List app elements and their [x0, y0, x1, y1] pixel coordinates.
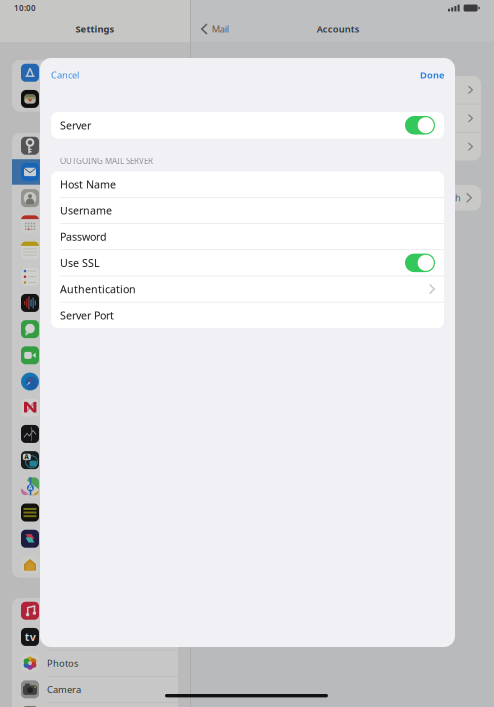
- staticText: Mail: [47, 166, 64, 178]
- staticText: Notes: [47, 244, 72, 257]
- button[interactable]: Voice Memos: [12, 290, 178, 316]
- staticText: Calendar: [47, 218, 86, 231]
- button[interactable]: Calendar: [12, 212, 178, 238]
- staticText: Cancel: [51, 69, 79, 81]
- staticText: Host Name: [60, 177, 116, 191]
- button[interactable]: Account: [203, 104, 481, 133]
- staticText: Mail: [212, 23, 229, 35]
- staticText: Use SSL: [60, 256, 100, 270]
- staticText: Done: [420, 69, 444, 81]
- button[interactable]: Passwords: [12, 133, 178, 159]
- staticText: App Store: [47, 67, 90, 79]
- button[interactable]: Password: [51, 224, 444, 250]
- staticText: tv: [25, 630, 36, 644]
- staticText: Messages: [47, 323, 88, 335]
- button[interactable]: Camera: [12, 677, 178, 703]
- button[interactable]: Books: [12, 500, 178, 526]
- button[interactable]: FaceTime: [12, 343, 178, 369]
- staticText: Accounts: [317, 23, 360, 35]
- button[interactable]: Notes: [12, 238, 178, 264]
- button[interactable]: Authentication: [51, 276, 444, 302]
- button[interactable]: Maps: [12, 474, 178, 500]
- staticText: Contacts: [47, 192, 84, 204]
- staticText: Reminders: [47, 271, 94, 283]
- button[interactable]: Host Name: [51, 171, 444, 198]
- staticText: 10:00: [14, 3, 36, 13]
- staticText: A: [28, 483, 33, 492]
- button[interactable]: Books: [12, 703, 178, 707]
- staticText: Settings: [75, 23, 114, 35]
- button[interactable]: Apple Watch: [12, 86, 178, 112]
- button[interactable]: Photos: [12, 650, 178, 677]
- button[interactable]: Shortcuts: [12, 526, 178, 552]
- button[interactable]: Stocks: [12, 421, 178, 447]
- button[interactable]: TV: [12, 624, 178, 650]
- button[interactable]: Mail: [12, 159, 178, 185]
- staticText: Photos: [47, 657, 78, 669]
- button[interactable]: Fetch New Data: [203, 185, 481, 210]
- button[interactable]: Account: [203, 133, 481, 160]
- staticText: A: [24, 452, 29, 461]
- button[interactable]: Server Port: [51, 302, 444, 328]
- staticText: Push: [439, 192, 461, 204]
- button[interactable]: Use SSL: [51, 250, 444, 276]
- button[interactable]: Username: [51, 198, 444, 224]
- staticText: Camera: [47, 683, 81, 696]
- button[interactable]: Server: [51, 112, 444, 138]
- staticText: Password: [60, 230, 107, 244]
- button[interactable]: Mail: [191, 23, 229, 35]
- button[interactable]: Cancel: [51, 61, 83, 89]
- button[interactable]: Home: [12, 552, 178, 578]
- button[interactable]: App Store: [12, 60, 178, 86]
- staticText: OUTGOING MAIL SERVER: [60, 156, 153, 166]
- staticText: Authentication: [60, 282, 136, 296]
- button[interactable]: Account: [203, 76, 481, 104]
- button[interactable]: Done: [416, 61, 444, 89]
- staticText: Voice Memos: [47, 297, 103, 309]
- button[interactable]: Reminders: [12, 264, 178, 290]
- button[interactable]: News: [12, 395, 178, 421]
- staticText: Server: [60, 118, 91, 132]
- button[interactable]: Messages: [12, 316, 178, 343]
- button[interactable]: Safari: [12, 369, 178, 395]
- button[interactable]: Translate: [12, 447, 178, 474]
- button[interactable]: Music: [12, 598, 178, 624]
- staticText: Server Port: [60, 308, 114, 322]
- button[interactable]: Contacts: [12, 185, 178, 212]
- staticText: Username: [60, 203, 112, 218]
